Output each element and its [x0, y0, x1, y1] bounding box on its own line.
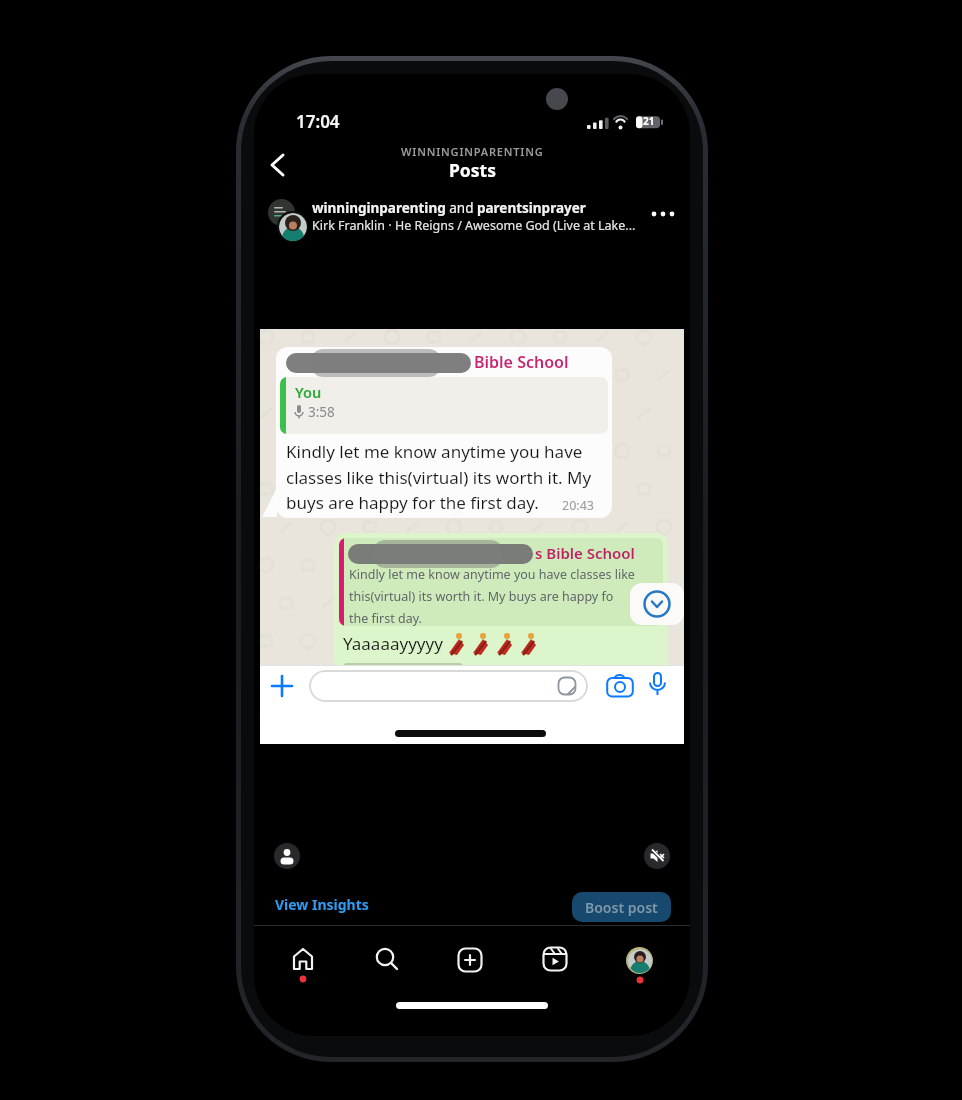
button[interactable]: [649, 672, 666, 700]
staticText: Posts: [449, 158, 496, 182]
staticText: You: [295, 382, 322, 402]
button[interactable]: [289, 945, 317, 973]
button[interactable]: [271, 675, 293, 697]
button[interactable]: [606, 674, 634, 698]
button[interactable]: [373, 945, 401, 973]
button[interactable]: [456, 946, 484, 974]
button[interactable]: [277, 211, 308, 242]
staticText: 20:43: [562, 497, 594, 514]
staticText: 21: [643, 114, 655, 128]
staticText: winninginparenting and parentsinprayer: [312, 199, 586, 217]
staticText: Yaaaaayyyyy: [343, 632, 443, 655]
staticText: Boost post: [585, 898, 658, 917]
staticText: Kirk Franklin · He Reigns / Awesome God …: [312, 217, 636, 234]
button[interactable]: [274, 843, 300, 869]
staticText: 17:04: [296, 110, 340, 133]
staticText: Bible School: [474, 351, 569, 373]
button[interactable]: [644, 843, 670, 869]
staticText: Kindly let me know anytime you have clas…: [349, 566, 635, 626]
button[interactable]: [648, 206, 678, 222]
button[interactable]: [630, 583, 684, 625]
button[interactable]: [309, 670, 588, 702]
button[interactable]: [264, 150, 294, 180]
staticText: Kindly let me know anytime you have clas…: [286, 440, 592, 514]
button[interactable]: View Insights: [275, 895, 369, 914]
staticText: View Insights: [275, 895, 369, 914]
staticText: WINNINGINPARENTING: [401, 144, 544, 159]
staticText: 3:58: [308, 403, 335, 421]
button[interactable]: Boost post: [572, 892, 671, 922]
button[interactable]: [541, 945, 569, 973]
staticText: s Bible School: [535, 543, 635, 563]
button[interactable]: [626, 947, 653, 974]
